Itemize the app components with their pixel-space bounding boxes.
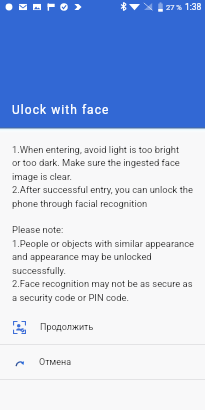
staticText: 27 %: [166, 3, 182, 12]
staticText: 1:38: [185, 2, 202, 12]
staticText: phone through facial recognition: [12, 198, 148, 209]
staticText: 2.Face recognition may not be as secure …: [12, 278, 193, 289]
staticText: Отмена: [39, 357, 72, 368]
staticText: or too dark. Make sure the ingested face: [12, 157, 180, 168]
button[interactable]: Continue with face unlock: [0, 310, 205, 344]
staticText: Ulock with face: [12, 103, 110, 117]
staticText: a security code or PIN code.: [12, 292, 129, 303]
button[interactable]: Cancel: [0, 345, 205, 379]
staticText: image is clear.: [12, 171, 73, 182]
staticText: 1.When entering, avoid light is too brig…: [12, 144, 180, 155]
staticText: 2.After successful entry, you can unlock…: [12, 184, 193, 195]
staticText: 1.People or objects with similar appeara…: [12, 238, 195, 249]
staticText: Please note:: [12, 224, 64, 235]
staticText: Продолжить: [40, 322, 94, 333]
staticText: and appearance may be unlocked: [12, 251, 152, 262]
staticText: successfully.: [12, 265, 66, 276]
